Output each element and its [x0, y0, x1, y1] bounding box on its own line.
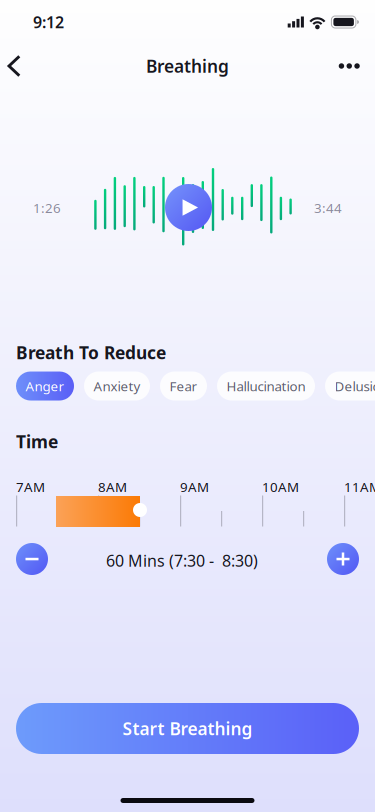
staticText: Anxiety [93, 377, 140, 395]
staticText: 9:12 [33, 11, 64, 33]
staticText: 9AM [180, 478, 209, 496]
button[interactable]: Anger [16, 371, 74, 400]
staticText: Anger [25, 377, 64, 395]
button[interactable]: Increase time [327, 543, 359, 575]
staticText: Fear [169, 377, 197, 395]
staticText: Start Breathing [122, 717, 252, 740]
button[interactable]: Decrease time [16, 543, 48, 575]
staticText: 3:44 [314, 199, 342, 217]
staticText: Hallucination [226, 377, 305, 395]
staticText: Time [16, 430, 58, 453]
staticText: Breath To Reduce [16, 341, 166, 364]
button[interactable]: Anxiety [84, 371, 150, 400]
staticText: 10AM [262, 478, 299, 496]
button[interactable]: Play [165, 184, 212, 231]
button[interactable]: Back [0, 44, 37, 88]
staticText: Breathing [146, 54, 229, 77]
staticText: Delusion [334, 377, 375, 395]
button[interactable]: Fear [160, 371, 207, 400]
staticText: 11AM [344, 478, 375, 496]
button[interactable]: Hallucination [217, 371, 315, 400]
staticText: 8AM [98, 478, 127, 496]
button[interactable]: More options [321, 44, 375, 88]
button[interactable]: Start Breathing [16, 703, 359, 754]
staticText: 7AM [16, 478, 45, 496]
button[interactable]: Delusion [325, 371, 375, 400]
staticText: 1:26 [33, 199, 61, 217]
staticText: 60 Mins (7:30 - 8:30) [106, 550, 258, 571]
